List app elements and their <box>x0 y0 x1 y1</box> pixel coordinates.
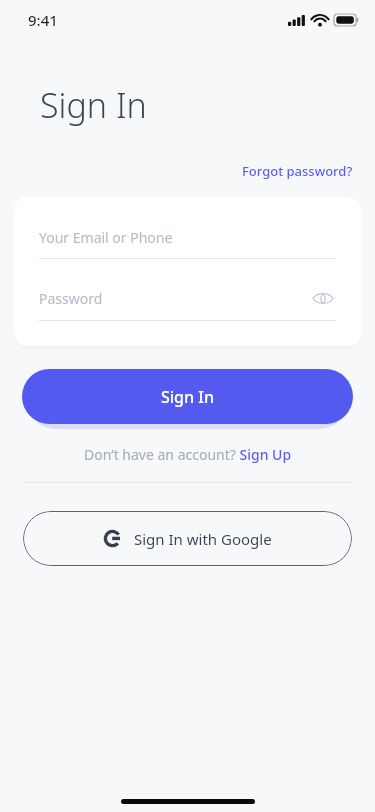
staticText: Password <box>39 289 310 308</box>
staticText: 9:41 <box>28 10 58 30</box>
staticText: Forgot password? <box>242 162 353 180</box>
button[interactable]: Sign In <box>22 369 353 424</box>
button[interactable]: Password <box>14 285 361 321</box>
staticText: Your Email or Phone <box>39 228 173 247</box>
button[interactable]: Don’t have an account? Sign Up <box>74 441 302 468</box>
staticText: Don’t have an account? Sign Up <box>84 445 292 464</box>
button[interactable]: Your Email or Phone <box>14 228 361 259</box>
staticText: Sign In <box>40 82 147 128</box>
button[interactable]: Forgot password? <box>220 158 375 184</box>
staticText: Sign In <box>161 386 214 408</box>
button[interactable]: Sign In with Google <box>23 511 352 566</box>
staticText: Sign In with Google <box>134 529 272 549</box>
button[interactable]: Show password <box>310 285 336 311</box>
